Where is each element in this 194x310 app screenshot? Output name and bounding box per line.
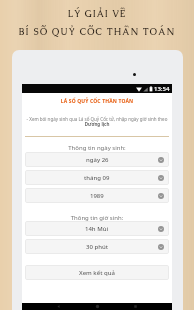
staticText: 14h Mùi [85,225,109,233]
other: Recents [133,304,138,309]
other: Home [95,304,100,309]
button[interactable]: Xem kết quả [25,265,169,280]
staticText: BÍ SỐ QUỶ CỐC THẦN TOÁN [0,26,194,38]
button[interactable]: 1989 [25,188,169,203]
staticText: LÁ SỐ QUỶ CỐC THẦN TOÁN [22,98,172,105]
other: Expand tháng 09 [158,175,164,181]
other: Expand ngày 26 [158,157,164,163]
button[interactable]: 14h Mùi [25,221,169,236]
staticText: 13:54 [154,85,170,93]
button[interactable]: 30 phút [25,239,169,254]
button[interactable]: tháng 09 [25,170,169,185]
staticText: Thông tin giờ sinh: [22,214,172,222]
staticText: Dương lịch [22,121,172,127]
staticText: ngày 26 [86,156,109,164]
other: Expand 30 phút [158,244,164,250]
other: Expand 1989 [158,193,164,199]
other: Back [56,304,61,309]
button[interactable]: ngày 26 [25,152,169,167]
staticText: 30 phút [86,243,108,251]
staticText: Xem kết quả [79,269,115,277]
staticText: tháng 09 [84,174,110,182]
staticText: - Xem bói ngày sinh qua Lá số Quỷ Cốc tử… [22,116,172,122]
staticText: LÝ GIẢI VỀ [0,8,194,20]
staticText: 1989 [90,192,104,200]
staticText: Thông tin ngày sinh: [22,144,172,152]
other: Expand 14h Mùi [158,226,164,232]
